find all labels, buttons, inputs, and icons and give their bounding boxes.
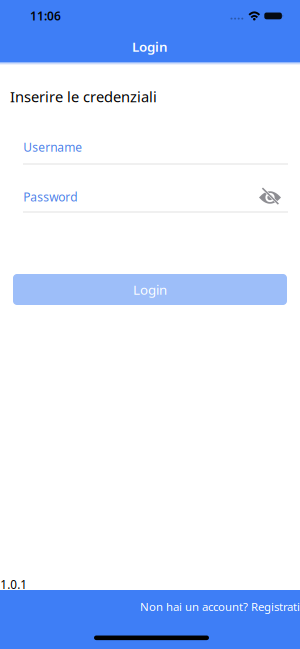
staticText: Login <box>133 281 167 298</box>
staticText: Non hai un account? Registrati <box>140 599 300 614</box>
staticText: Login <box>132 38 168 55</box>
staticText: 1.0.1 <box>0 576 27 592</box>
button[interactable]: Non hai un account? Registrati <box>140 599 300 614</box>
button[interactable]: Login <box>13 274 287 305</box>
staticText: 11:06 <box>30 8 61 24</box>
button[interactable]: Username <box>13 138 288 168</box>
button[interactable]: Password <box>13 188 288 218</box>
staticText: Username <box>23 139 82 155</box>
staticText: Password <box>23 189 77 205</box>
button[interactable]: Show password <box>258 189 282 205</box>
staticText: Inserire le credenziali <box>10 87 157 106</box>
